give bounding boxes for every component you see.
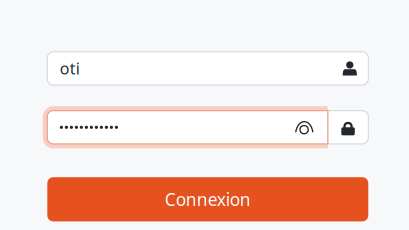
button[interactable]: Connexion xyxy=(47,177,368,221)
staticText: oti xyxy=(60,58,80,79)
button[interactable] xyxy=(47,111,328,144)
button[interactable]: Lock xyxy=(328,111,368,144)
staticText: Connexion xyxy=(165,188,251,211)
button[interactable]: oti xyxy=(47,52,368,85)
